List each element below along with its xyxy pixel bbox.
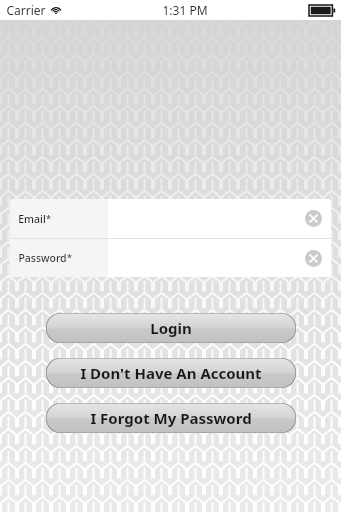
staticText: * <box>67 251 72 263</box>
button[interactable]: Clear Email <box>108 199 331 238</box>
button[interactable]: I Forgot My Password <box>46 403 296 433</box>
staticText: Email <box>18 212 46 226</box>
staticText: * <box>46 212 51 224</box>
staticText: 1:31 PM <box>162 2 208 18</box>
staticText: I Forgot My Password <box>90 408 252 428</box>
button[interactable]: Clear Password <box>108 239 331 277</box>
staticText: Password <box>18 251 67 265</box>
button[interactable]: Clear Password <box>305 250 322 267</box>
staticText: Login <box>150 318 192 338</box>
button[interactable]: Login <box>46 313 296 343</box>
staticText: I Don't Have An Account <box>80 363 262 383</box>
button[interactable]: I Don't Have An Account <box>46 358 296 388</box>
staticText: Carrier <box>6 2 46 18</box>
button[interactable]: Clear Email <box>305 210 322 227</box>
